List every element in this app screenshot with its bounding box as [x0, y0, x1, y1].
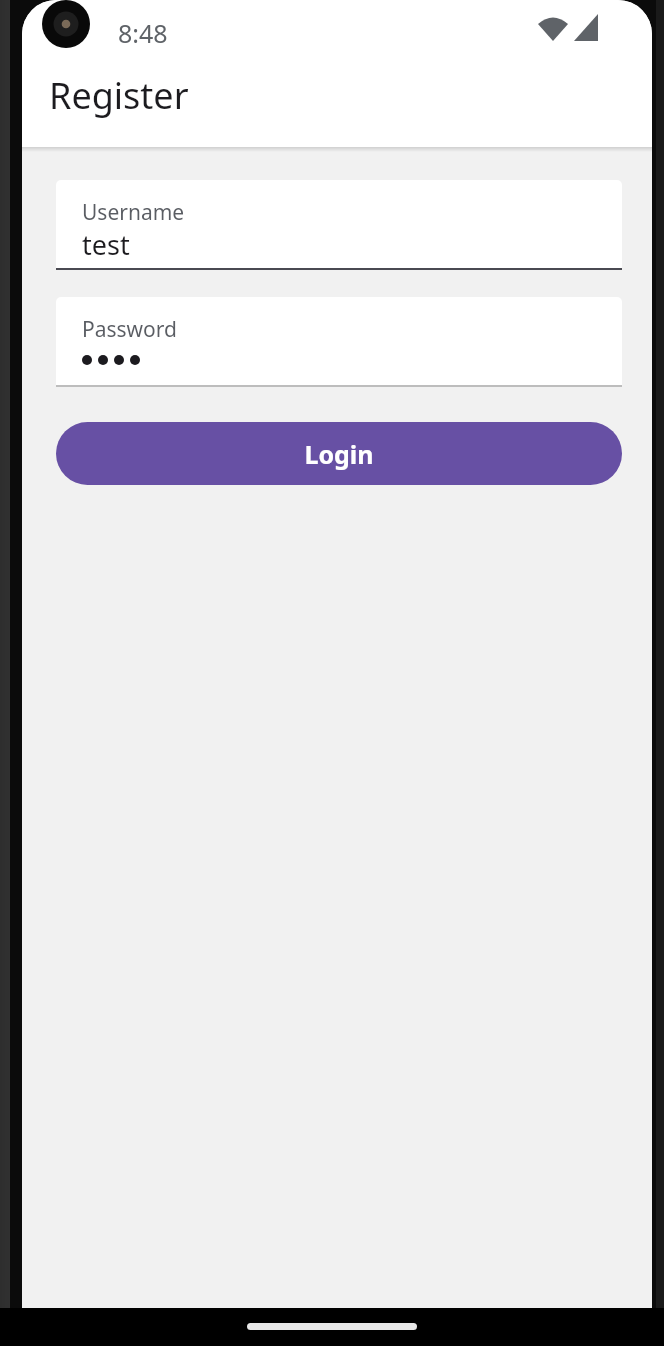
- staticText: Login: [304, 437, 374, 471]
- staticText: Password: [82, 315, 177, 344]
- staticText: Register: [49, 71, 189, 120]
- staticText: 8:48: [118, 16, 168, 50]
- button[interactable]: Username: [56, 180, 622, 270]
- staticText: Username: [82, 198, 185, 227]
- staticText: test: [82, 226, 130, 263]
- button[interactable]: Login: [56, 422, 622, 485]
- button[interactable]: Password: [56, 297, 622, 387]
